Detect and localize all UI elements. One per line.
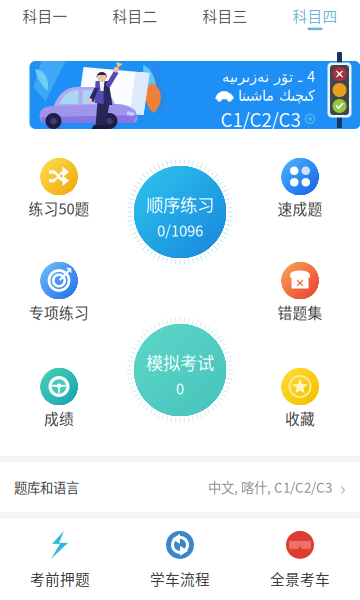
staticText: 全景考车 xyxy=(270,568,330,589)
staticText: 速成题 xyxy=(277,197,322,219)
staticText: كىچىك ماشىنا xyxy=(237,87,314,104)
staticText: 0 xyxy=(176,377,184,399)
staticText: 成绩 xyxy=(44,407,74,429)
button[interactable]: 成绩 xyxy=(16,368,102,431)
staticText: 错题集 xyxy=(277,301,322,323)
button[interactable]: 科目二 xyxy=(90,0,180,45)
staticText: 科目二 xyxy=(112,5,157,26)
staticText: 学车流程 xyxy=(150,568,210,589)
staticText: 4 ـ تۆر نەزىرىيە xyxy=(221,65,314,86)
staticText: 练习50题 xyxy=(28,197,89,219)
staticText: 科目三 xyxy=(202,5,247,26)
button[interactable]: 练习50题 xyxy=(16,158,102,221)
button[interactable]: 科目四 xyxy=(270,0,360,45)
button[interactable]: 全景考车 xyxy=(240,519,360,600)
staticText: 0/1096 xyxy=(157,219,203,241)
button[interactable]: 科目三 xyxy=(180,0,270,45)
button[interactable]: 4 ـ تۆر نەزىرىيە xyxy=(0,0,360,88)
button[interactable]: 专项练习 xyxy=(16,262,102,325)
button[interactable]: 学车流程 xyxy=(120,519,240,600)
button[interactable]: 收藏 xyxy=(257,368,343,431)
staticText: › xyxy=(332,473,346,500)
staticText: 科目四 xyxy=(292,5,337,26)
staticText: 中文, 喀什, C1/C2/C3 xyxy=(208,477,332,497)
button[interactable]: 题库和语言 xyxy=(0,462,360,512)
button[interactable]: 科目一 xyxy=(0,0,90,45)
staticText: 专项练习 xyxy=(29,301,89,323)
staticText: 题库和语言 xyxy=(14,477,79,497)
staticText: C1/C2/C3 xyxy=(220,105,300,132)
button[interactable]: 速成题 xyxy=(257,158,343,221)
button[interactable]: 模拟考试 xyxy=(125,315,235,425)
button[interactable]: 顺序练习 xyxy=(125,157,235,267)
staticText: 收藏 xyxy=(285,407,315,429)
staticText: 顺序练习 xyxy=(146,191,214,216)
button[interactable]: 错题集 xyxy=(257,262,343,325)
button[interactable]: 考前押题 xyxy=(0,519,120,600)
staticText: 考前押题 xyxy=(30,568,90,589)
staticText: 模拟考试 xyxy=(146,349,214,374)
staticText: 科目一 xyxy=(22,5,67,26)
